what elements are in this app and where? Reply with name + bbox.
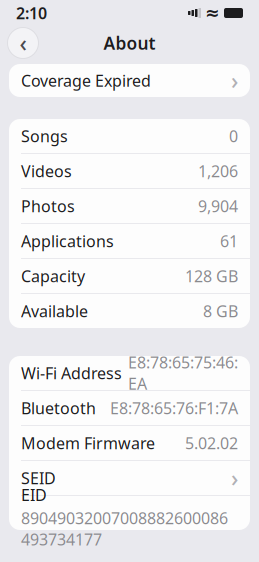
staticText: Photos: [21, 195, 75, 217]
staticText: Songs: [21, 125, 68, 147]
staticText: About: [103, 31, 155, 54]
staticText: 9,904: [198, 195, 238, 217]
button[interactable]: Coverage Expired: [9, 64, 250, 97]
staticText: E8:78:65:75:46:EA: [128, 352, 238, 394]
staticText: 2:10: [16, 2, 47, 24]
staticText: Capacity: [21, 265, 85, 287]
staticText: 8 GB: [203, 300, 238, 322]
staticText: ‹: [19, 28, 26, 58]
staticText: EID: [21, 484, 47, 505]
staticText: SEID: [21, 467, 56, 489]
staticText: E8:78:65:76:F1:7A: [110, 397, 238, 419]
staticText: Bluetooth: [21, 397, 96, 419]
staticText: Coverage Expired: [21, 70, 151, 91]
staticText: ›: [231, 65, 238, 95]
button[interactable]: SEID: [9, 461, 250, 495]
staticText: Videos: [21, 160, 72, 182]
staticText: 89049032007008882600086493734177: [21, 507, 228, 550]
staticText: Modem Firmware: [21, 432, 155, 454]
staticText: ›: [231, 463, 238, 493]
staticText: 0: [229, 125, 238, 147]
staticText: 128 GB: [185, 265, 238, 287]
staticText: 61: [220, 230, 238, 252]
staticText: Available: [21, 300, 88, 322]
staticText: 5.02.02: [185, 432, 238, 454]
staticText: Applications: [21, 230, 114, 252]
staticText: ≈: [205, 3, 220, 23]
staticText: 1,206: [198, 160, 238, 182]
staticText: Wi-Fi Address: [21, 362, 122, 384]
button[interactable]: Back: [5, 25, 41, 61]
